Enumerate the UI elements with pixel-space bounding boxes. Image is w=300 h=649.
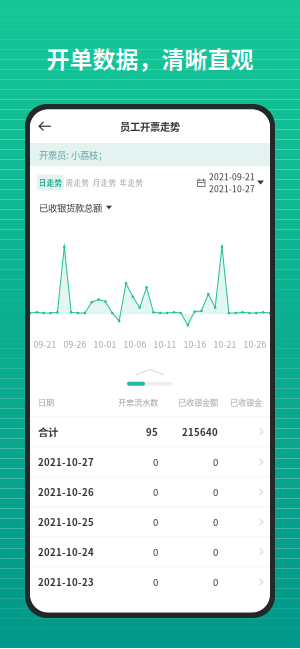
- staticText: 0: [213, 545, 218, 559]
- staticText: 10-11: [153, 338, 176, 350]
- staticText: 0: [213, 575, 218, 589]
- staticText: 10-21: [213, 338, 236, 350]
- button[interactable]: 2021-10-27: [30, 446, 270, 476]
- staticText: 已收银货款总额: [39, 201, 102, 214]
- staticText: 月走势: [92, 177, 116, 188]
- staticText: 开单数据，清晰直观: [46, 41, 253, 75]
- staticText: 0: [153, 455, 158, 469]
- staticText: 已收银金额: [178, 396, 218, 408]
- staticText: 0: [153, 485, 158, 499]
- staticText: 10-16: [183, 338, 206, 350]
- button[interactable]: 2021-10-25: [30, 506, 270, 536]
- staticText: 开票员: 小荔枝；: [39, 148, 107, 161]
- staticText: 0: [213, 455, 218, 469]
- staticText: 0: [213, 485, 218, 499]
- staticText: 0: [153, 575, 158, 589]
- button[interactable]: 已收银货款总额: [39, 201, 112, 214]
- staticText: 2021-10-27: [38, 455, 94, 469]
- staticText: 开票流水数: [118, 396, 158, 408]
- button[interactable]: 月走势: [91, 174, 118, 190]
- staticText: 2021-10-27: [209, 182, 255, 195]
- staticText: 0: [213, 515, 218, 529]
- staticText: 09-26: [63, 338, 86, 350]
- button[interactable]: Date range: [197, 166, 264, 199]
- button[interactable]: 日走势: [37, 174, 64, 190]
- staticText: 员工开票走势: [120, 119, 180, 134]
- button[interactable]: Back: [30, 112, 58, 140]
- staticText: 95: [146, 425, 158, 439]
- staticText: 2021-10-23: [38, 575, 94, 589]
- staticText: 2021-10-25: [38, 515, 94, 529]
- staticText: 10-26: [243, 338, 266, 350]
- button[interactable]: Collapse chart: [136, 366, 164, 378]
- staticText: 09-21: [33, 338, 56, 350]
- button[interactable]: 年走势: [118, 174, 145, 190]
- staticText: 周走势: [65, 177, 89, 188]
- staticText: 合计: [38, 424, 58, 439]
- staticText: 0: [153, 515, 158, 529]
- staticText: 已收银金: [230, 396, 262, 408]
- button[interactable]: 2021-10-23: [30, 566, 270, 596]
- staticText: 日期: [38, 396, 54, 408]
- button[interactable]: 合计: [30, 416, 270, 446]
- staticText: 215640: [182, 425, 218, 439]
- staticText: 日走势: [38, 177, 62, 188]
- button[interactable]: 2021-10-26: [30, 476, 270, 506]
- staticText: 10-06: [123, 338, 146, 350]
- staticText: 10-01: [93, 338, 116, 350]
- staticText: 2021-10-24: [38, 545, 94, 559]
- staticText: 0: [153, 545, 158, 559]
- button[interactable]: 2021-10-24: [30, 536, 270, 566]
- button[interactable]: 周走势: [64, 174, 91, 190]
- button[interactable]: Scroll chart: [127, 382, 173, 386]
- staticText: 2021-09-21: [209, 170, 255, 183]
- staticText: 年走势: [119, 177, 143, 188]
- staticText: 2021-10-26: [38, 485, 94, 499]
